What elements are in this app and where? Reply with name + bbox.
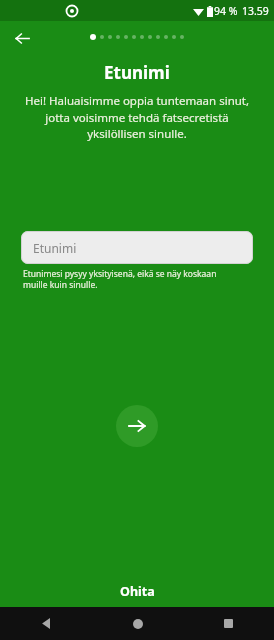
staticText: Ohita: [120, 583, 155, 600]
staticText: Hei! Haluaisimme oppia tuntemaan sinut, …: [16, 93, 258, 141]
button[interactable]: Takaisin: [0, 607, 92, 640]
staticText: Etunimi: [33, 240, 77, 256]
button[interactable]: Koti: [92, 607, 183, 640]
button[interactable]: Takaisin: [8, 24, 36, 52]
staticText: 13.59: [242, 4, 269, 18]
button[interactable]: Ohita: [0, 576, 274, 607]
staticText: Etunimesi pysyy yksityisenä, eikä se näy…: [23, 268, 241, 290]
staticText: Etunimi: [104, 61, 170, 84]
button[interactable]: Jatka: [116, 405, 158, 447]
staticText: 94 %: [214, 4, 238, 18]
button[interactable]: Etunimi: [21, 231, 253, 264]
button[interactable]: Viimeisimmät: [183, 607, 274, 640]
